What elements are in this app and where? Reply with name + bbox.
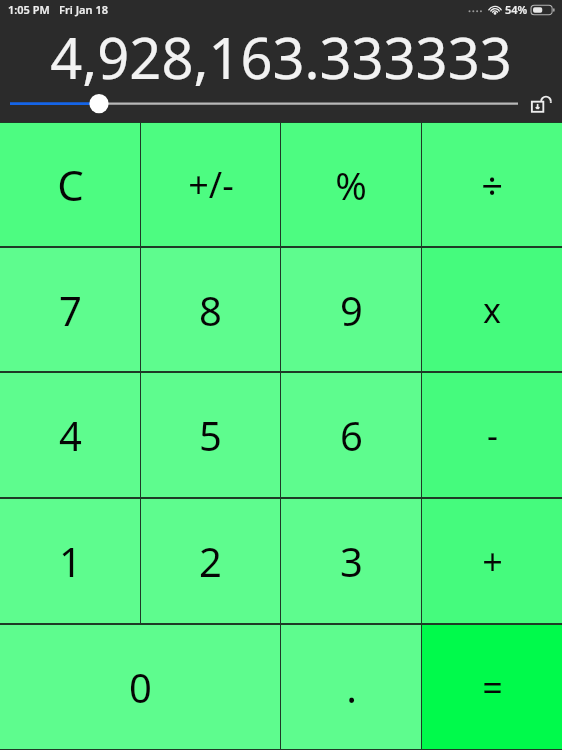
staticText: 3 — [340, 534, 363, 588]
staticText: - — [487, 412, 498, 458]
staticText: 8 — [199, 283, 222, 337]
button[interactable]: Unlock — [528, 89, 556, 117]
button[interactable] — [0, 87, 562, 119]
button[interactable]: + — [422, 499, 562, 623]
button[interactable]: % — [281, 123, 421, 246]
staticText: 5 — [199, 408, 222, 462]
button[interactable]: ÷ — [422, 123, 562, 246]
staticText: 2 — [199, 534, 222, 588]
button[interactable]: 1 — [0, 499, 140, 623]
button[interactable]: 5 — [141, 373, 280, 497]
staticText: x — [483, 287, 501, 333]
staticText: 4 — [59, 408, 82, 462]
staticText: C — [57, 156, 84, 213]
button[interactable]: 3 — [281, 499, 421, 623]
button[interactable]: 4 — [0, 373, 140, 497]
staticText: ÷ — [481, 159, 503, 211]
button[interactable]: 6 — [281, 373, 421, 497]
button[interactable]: - — [422, 373, 562, 497]
button[interactable]: 2 — [141, 499, 280, 623]
staticText: 6 — [340, 408, 363, 462]
staticText: % — [335, 159, 367, 211]
button[interactable]: 8 — [141, 248, 280, 371]
staticText: Fri Jan 18 — [59, 2, 108, 17]
staticText: 54% — [505, 2, 528, 17]
staticText: +/- — [188, 160, 234, 209]
button[interactable]: = — [422, 625, 562, 749]
staticText: 0 — [129, 660, 152, 714]
staticText: 4,928,163.333333 — [0, 19, 562, 87]
button[interactable]: 7 — [0, 248, 140, 371]
button[interactable]: 9 — [281, 248, 421, 371]
staticText: + — [482, 537, 503, 586]
button[interactable]: . — [281, 625, 421, 749]
button[interactable]: 0 — [0, 625, 280, 749]
staticText: 9 — [340, 283, 363, 337]
staticText: = — [482, 663, 503, 712]
button[interactable]: +/- — [141, 123, 280, 246]
staticText: 1:05 PM — [8, 2, 50, 17]
staticText: . — [346, 660, 357, 714]
button[interactable]: C — [0, 123, 140, 246]
button[interactable]: x — [422, 248, 562, 371]
staticText: 1 — [59, 534, 82, 588]
staticText: 7 — [59, 283, 82, 337]
